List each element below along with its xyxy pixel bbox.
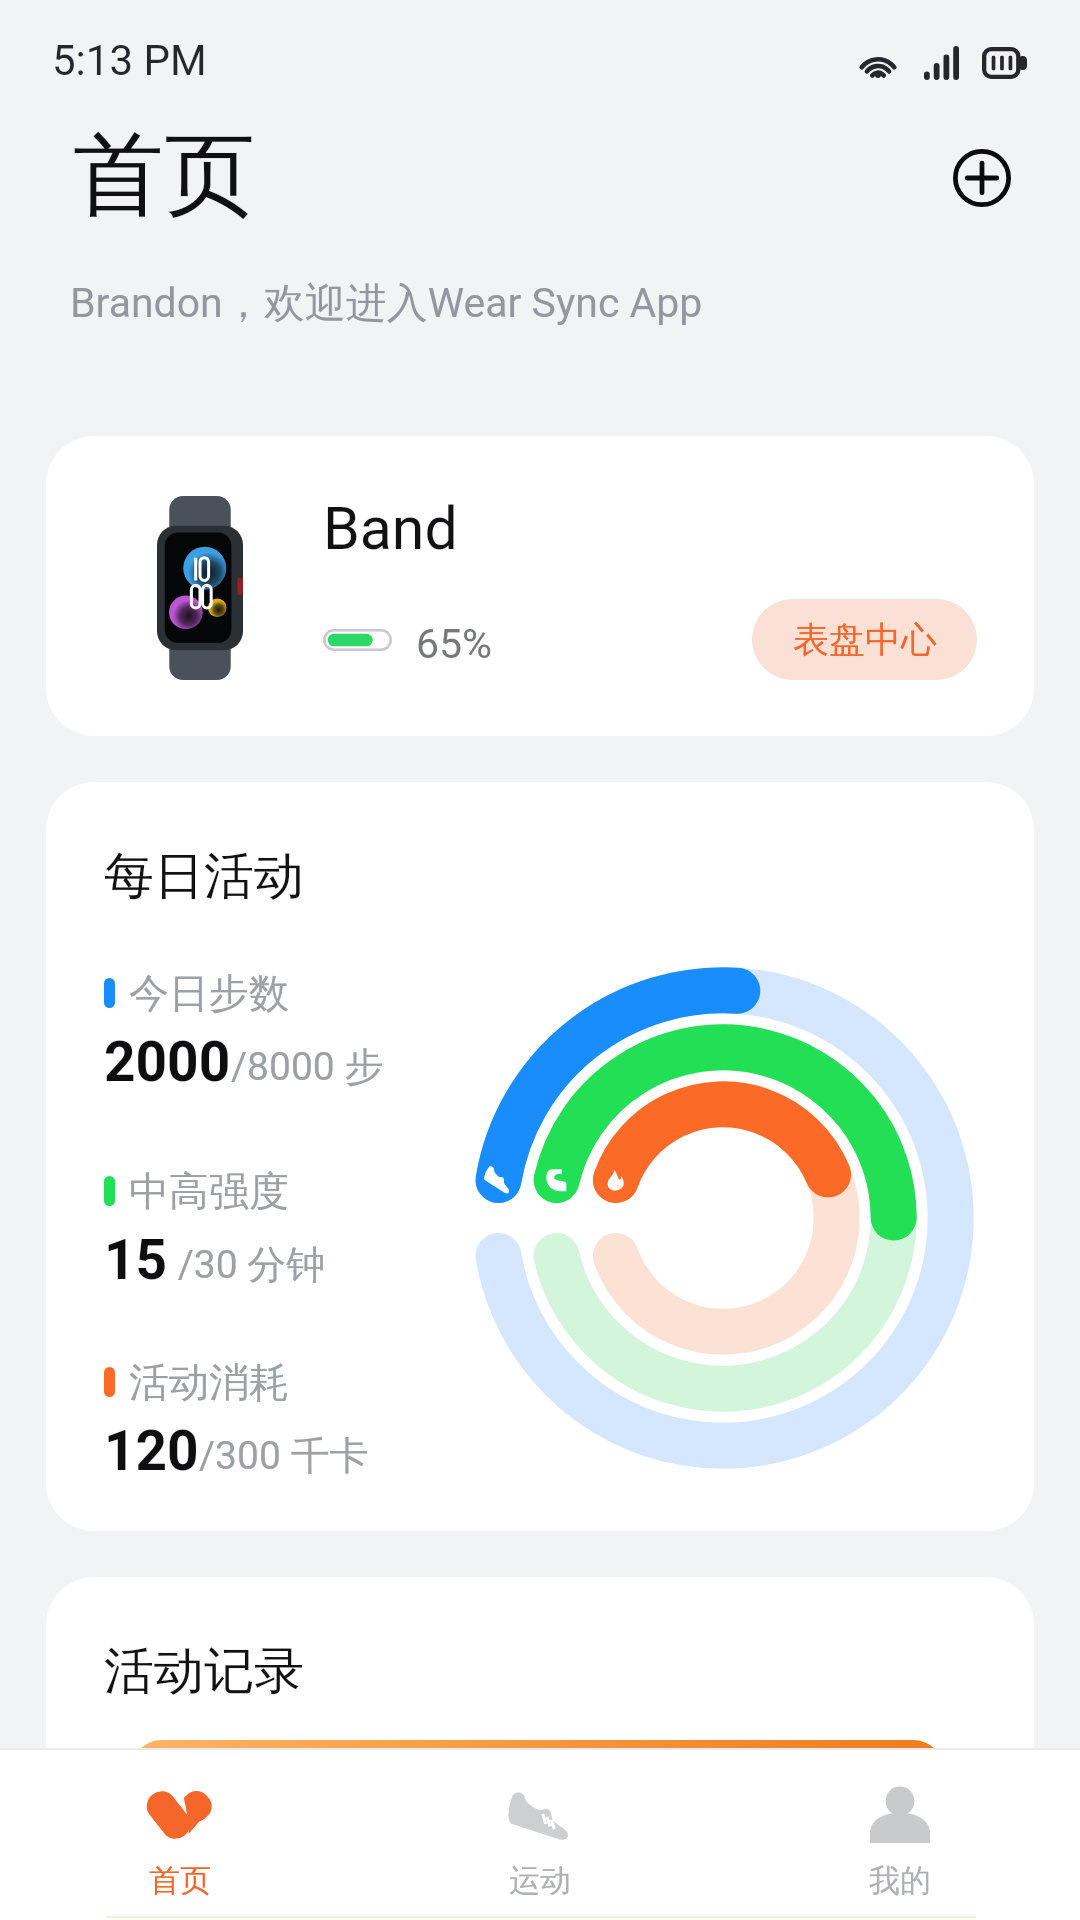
staticText: 运动: [509, 1861, 571, 1900]
staticText: 5:13 PM: [52, 36, 207, 85]
button[interactable]: 首页: [0, 1750, 360, 1900]
staticText: 活动记录: [104, 1640, 304, 1703]
staticText: 中高强度: [129, 1166, 289, 1216]
staticText: Band: [323, 494, 458, 563]
staticText: 首页: [149, 1861, 211, 1900]
staticText: 今日步数: [129, 968, 289, 1018]
staticText: Brandon，欢迎进入Wear Sync App: [70, 278, 703, 330]
staticText: 65%: [416, 620, 493, 668]
staticText: 我的: [869, 1861, 931, 1900]
staticText: /300 千卡: [199, 1431, 369, 1480]
staticText: 表盘中心: [793, 617, 937, 662]
button[interactable]: Add device: [940, 136, 1024, 220]
button[interactable]: [130, 1740, 945, 1910]
button[interactable]: 表盘中心: [752, 599, 977, 680]
staticText: 每日活动: [104, 845, 304, 908]
staticText: 2000: [104, 1030, 231, 1094]
staticText: 首页: [73, 118, 255, 233]
staticText: /8000 步: [231, 1042, 384, 1091]
staticText: 活动消耗: [129, 1357, 289, 1407]
button[interactable]: 运动: [360, 1750, 720, 1900]
button[interactable]: 我的: [720, 1750, 1080, 1900]
button[interactable]: Band: [46, 436, 1034, 736]
staticText: /30 分钟: [168, 1240, 326, 1289]
staticText: 15: [104, 1228, 168, 1292]
staticText: 120: [104, 1419, 199, 1483]
